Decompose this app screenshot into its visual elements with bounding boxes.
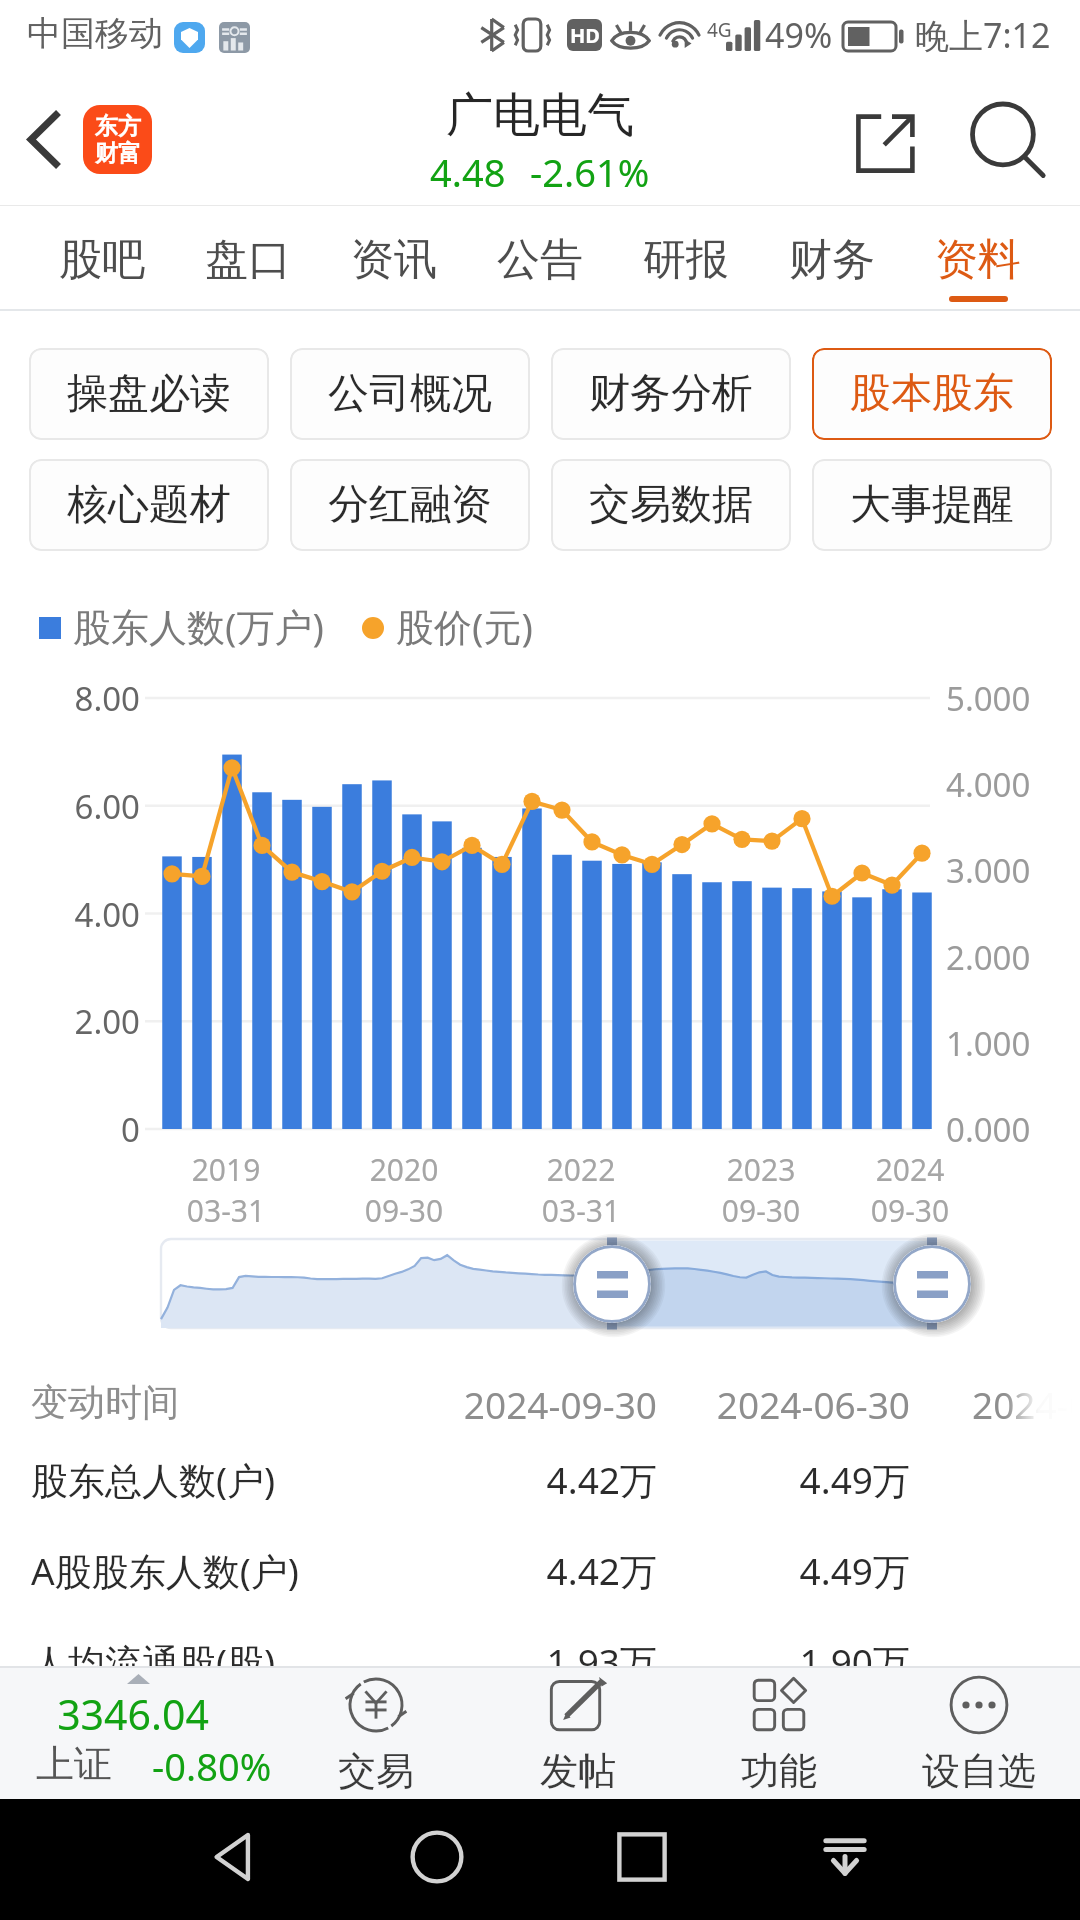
button[interactable]: 功能	[679, 1666, 879, 1799]
button[interactable]: 盘口	[175, 206, 321, 312]
button[interactable]: 交易	[276, 1666, 476, 1799]
staticText: 4.48	[430, 146, 506, 198]
staticText: 财务	[789, 233, 875, 287]
staticText: 公司概况	[328, 368, 492, 420]
staticText: 1.000	[946, 1021, 1080, 1066]
staticText: 03-31	[511, 1190, 651, 1231]
staticText: 2024	[840, 1149, 980, 1190]
button[interactable]: 公告	[467, 206, 613, 312]
staticText: 4.000	[946, 762, 1080, 807]
staticText: 1.90万	[648, 1636, 910, 1687]
staticText: 交易数据	[589, 479, 753, 531]
staticText: 09-30	[840, 1190, 980, 1231]
button[interactable]: 股东总人数(户)	[0, 1435, 1080, 1525]
staticText: 广电电气	[340, 86, 740, 145]
staticText: 财务分析	[589, 368, 753, 420]
staticText: 4.00	[0, 892, 140, 937]
button[interactable]: Range handle	[893, 1245, 971, 1323]
button[interactable]: Range handle	[573, 1245, 651, 1323]
button[interactable]: 交易数据	[551, 459, 791, 551]
button[interactable]: 核心题材	[29, 459, 269, 551]
staticText: 研报	[643, 233, 729, 287]
staticText: 盘口	[205, 233, 291, 287]
staticText: 股价(元)	[396, 600, 533, 652]
button[interactable]: A股股东人数(户)	[0, 1526, 1080, 1616]
button[interactable]: Home	[377, 1799, 497, 1920]
staticText: 功能	[741, 1747, 817, 1795]
staticText: 4.49万	[648, 1545, 910, 1596]
staticText: 0	[0, 1107, 140, 1152]
staticText: -0.80%	[152, 1740, 272, 1792]
button[interactable]: 财务分析	[551, 348, 791, 440]
staticText: 2024-03-31	[972, 1379, 1080, 1429]
staticText: 股吧	[59, 233, 145, 287]
staticText: 09-30	[334, 1190, 474, 1231]
staticText: 4.42万	[395, 1454, 657, 1505]
staticText: 4.49万	[648, 1454, 910, 1505]
staticText: 2024-06-30	[648, 1379, 910, 1429]
button[interactable]: East Money	[83, 105, 152, 174]
button[interactable]: 变动时间	[0, 1360, 1080, 1450]
staticText: 晚上7:12	[915, 12, 1051, 58]
staticText: 分红融资	[328, 479, 492, 531]
staticText: 变动时间	[31, 1379, 461, 1426]
button[interactable]: Recents	[582, 1799, 702, 1920]
staticText: 资讯	[351, 233, 437, 287]
button[interactable]: 操盘必读	[29, 348, 269, 440]
button[interactable]: 设自选	[879, 1666, 1079, 1799]
staticText: 操盘必读	[67, 368, 231, 420]
staticText: 2.000	[946, 935, 1080, 980]
staticText: 资料	[935, 233, 1021, 287]
staticText: 2019	[156, 1149, 296, 1190]
staticText: 0.000	[946, 1107, 1080, 1152]
button[interactable]: 财务	[759, 206, 905, 312]
staticText: 1.93万	[395, 1636, 657, 1687]
button[interactable]: 公司概况	[290, 348, 530, 440]
staticText: 中国移动	[27, 12, 163, 55]
staticText: 2023	[691, 1149, 831, 1190]
staticText: 3.000	[946, 848, 1080, 893]
staticText: 股本股东	[850, 368, 1014, 420]
button[interactable]: Search	[962, 95, 1056, 189]
staticText: 公告	[497, 233, 583, 287]
staticText: 大事提醒	[850, 479, 1014, 531]
staticText: 人均流通股(股)	[31, 1636, 461, 1687]
staticText: 4.42万	[395, 1545, 657, 1596]
staticText: 上证	[36, 1740, 112, 1788]
staticText: 03-31	[156, 1190, 296, 1231]
button[interactable]: Back	[6, 102, 80, 176]
staticText: 交易	[338, 1747, 414, 1795]
staticText: 2020	[334, 1149, 474, 1190]
staticText: 2.00	[0, 999, 140, 1044]
staticText: 核心题材	[67, 479, 231, 531]
staticText: 2024-09-30	[395, 1379, 657, 1429]
button[interactable]: 研报	[613, 206, 759, 312]
staticText: 发帖	[540, 1747, 616, 1795]
button[interactable]: 股本股东	[812, 348, 1052, 440]
button[interactable]: 资讯	[321, 206, 467, 312]
button[interactable]: 人均流通股(股)	[0, 1617, 1080, 1707]
button[interactable]: Share	[840, 97, 932, 189]
button[interactable]: 大事提醒	[812, 459, 1052, 551]
button[interactable]: Collapse	[785, 1799, 905, 1920]
staticText: 09-30	[691, 1190, 831, 1231]
button[interactable]: 3346.04	[0, 1666, 290, 1799]
staticText: 2022	[511, 1149, 651, 1190]
button[interactable]: 股吧	[29, 206, 175, 312]
button[interactable]: 发帖	[478, 1666, 678, 1799]
staticText: -2.61%	[530, 146, 650, 198]
staticText: 49%	[765, 12, 833, 58]
staticText: 股东人数(万户)	[73, 600, 324, 652]
staticText: 4G	[707, 17, 732, 43]
button[interactable]: 资料	[905, 206, 1051, 312]
staticText: 3346.04	[0, 1686, 278, 1742]
button[interactable]: 分红融资	[290, 459, 530, 551]
staticText: 设自选	[922, 1747, 1036, 1795]
staticText: 5.000	[946, 676, 1080, 721]
button[interactable]: Back	[174, 1799, 294, 1920]
staticText: 6.00	[0, 784, 140, 829]
staticText: 东方 财富	[95, 112, 141, 168]
staticText: 股东总人数(户)	[31, 1454, 461, 1505]
staticText: 8.00	[0, 676, 140, 721]
staticText: HD	[570, 22, 600, 49]
